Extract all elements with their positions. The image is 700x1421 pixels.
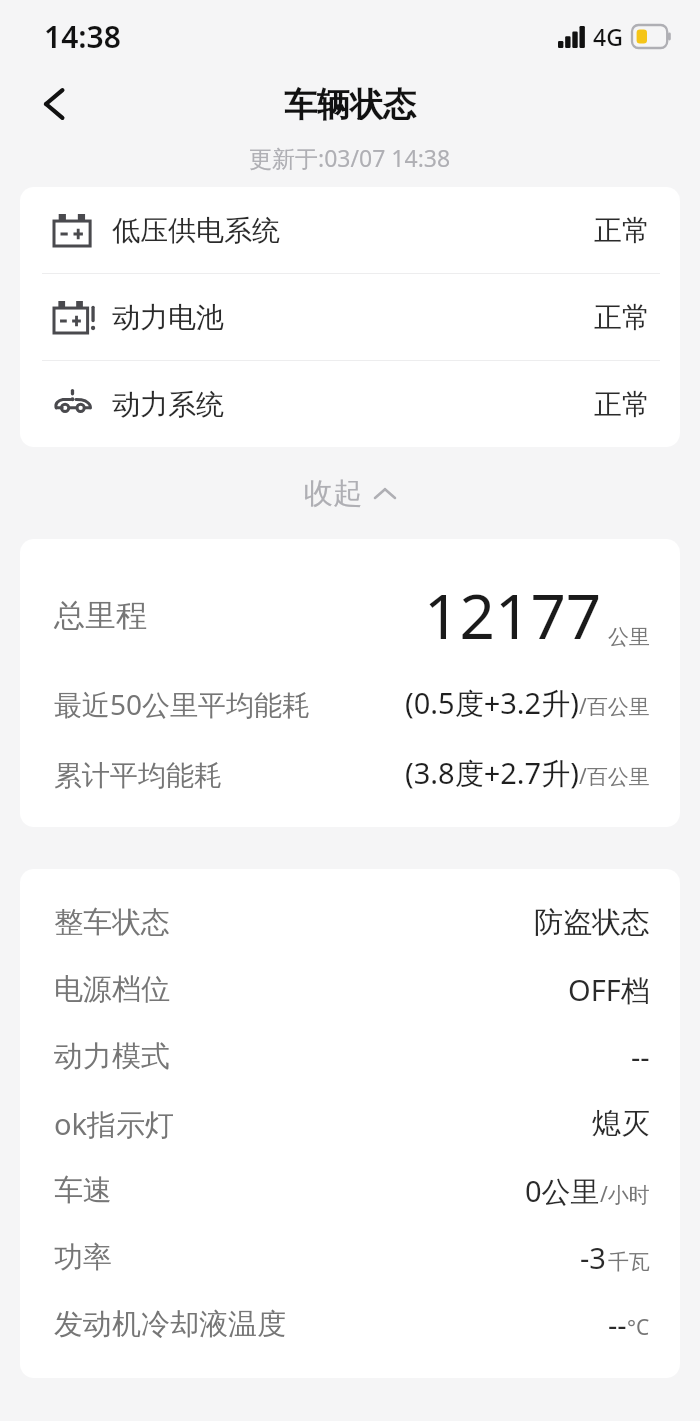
staticText: /百公里 <box>579 692 650 721</box>
staticText: 公里 <box>608 624 650 650</box>
staticText: 正常 <box>594 300 650 335</box>
button[interactable]: 车速 <box>20 1157 680 1224</box>
staticText: -3 <box>580 1238 606 1277</box>
staticText: 14:38 <box>44 16 121 57</box>
staticText: 熄灭 <box>592 1105 650 1142</box>
staticText: 功率 <box>54 1239 112 1276</box>
staticText: (0.5度+3.2升) <box>405 683 579 723</box>
staticText: 正常 <box>594 387 650 422</box>
button[interactable]: 低压供电系统 <box>20 187 680 273</box>
staticText: 0公里 <box>525 1171 600 1211</box>
staticText: 更新于:03/07 14:38 <box>249 142 451 173</box>
staticText: (3.8度+2.7升) <box>405 753 579 793</box>
button[interactable]: 发动机冷却液温度 <box>20 1291 680 1358</box>
staticText: 正常 <box>594 213 650 248</box>
button[interactable]: 整车状态 <box>20 889 680 956</box>
button[interactable]: 动力系统 <box>20 361 680 447</box>
button[interactable]: 收起 <box>290 467 410 520</box>
staticText: 车速 <box>54 1172 112 1209</box>
staticText: 车辆状态 <box>284 84 416 126</box>
staticText: 整车状态 <box>54 904 170 941</box>
staticText: 动力电池 <box>112 300 224 335</box>
button[interactable]: 动力电池 <box>20 274 680 360</box>
button[interactable]: Back <box>26 76 82 132</box>
staticText: ok指示灯 <box>54 1104 175 1144</box>
staticText: 发动机冷却液温度 <box>54 1306 286 1343</box>
staticText: °C <box>627 1313 650 1342</box>
staticText: 千瓦 <box>608 1249 650 1275</box>
button[interactable]: ok指示灯 <box>20 1090 680 1157</box>
staticText: -- <box>631 1037 650 1076</box>
staticText: 总里程 <box>54 596 147 635</box>
button[interactable]: 功率 <box>20 1224 680 1291</box>
staticText: 最近50公里平均能耗 <box>54 685 311 723</box>
staticText: 低压供电系统 <box>112 213 280 248</box>
button[interactable]: 动力模式 <box>20 1023 680 1090</box>
staticText: 动力系统 <box>112 387 224 422</box>
staticText: 12177 <box>424 573 602 657</box>
button[interactable]: 电源档位 <box>20 956 680 1023</box>
staticText: 电源档位 <box>54 971 170 1008</box>
staticText: 累计平均能耗 <box>54 758 222 793</box>
staticText: -- <box>608 1305 627 1344</box>
staticText: /百公里 <box>579 762 650 791</box>
staticText: /小时 <box>600 1180 650 1209</box>
staticText: 动力模式 <box>54 1038 170 1075</box>
staticText: 4G <box>593 21 623 52</box>
staticText: OFF档 <box>568 970 650 1010</box>
staticText: 收起 <box>304 475 362 512</box>
staticText: 防盗状态 <box>534 904 650 941</box>
